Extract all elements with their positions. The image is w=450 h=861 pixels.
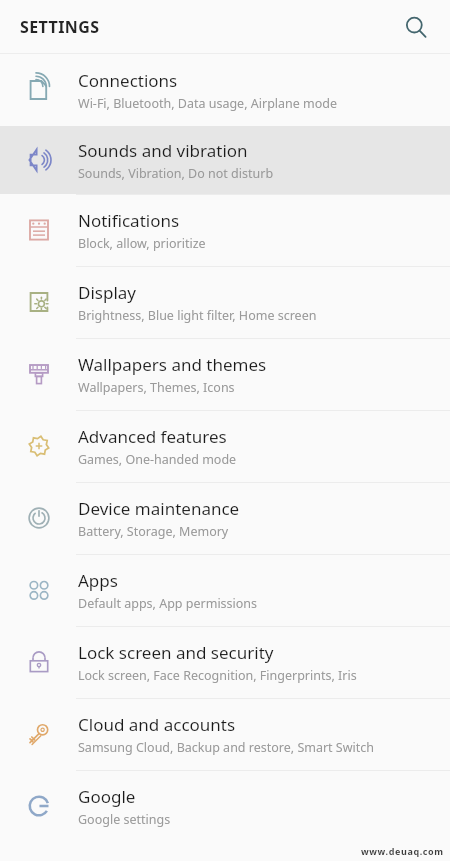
button[interactable]: Google	[0, 770, 450, 842]
staticText: Lock screen and security	[78, 641, 274, 664]
staticText: Wi-Fi, Bluetooth, Data usage, Airplane m…	[78, 95, 338, 112]
staticText: Wallpapers and themes	[78, 353, 267, 376]
button[interactable]: Cloud and accounts	[0, 698, 450, 770]
button[interactable]: Wallpapers and themes	[0, 338, 450, 410]
button[interactable]: Connections	[0, 54, 450, 126]
staticText: Brightness, Blue light filter, Home scre…	[78, 307, 317, 324]
staticText: Google	[78, 785, 136, 808]
button[interactable]: Sounds and vibration	[0, 126, 450, 194]
staticText: Sounds, Vibration, Do not disturb	[78, 165, 274, 182]
button[interactable]: Search	[394, 5, 438, 49]
button[interactable]: Advanced features	[0, 410, 450, 482]
staticText: SETTINGS	[20, 16, 100, 38]
button[interactable]: Lock screen and security	[0, 626, 450, 698]
staticText: Apps	[78, 569, 118, 592]
staticText: Connections	[78, 69, 178, 92]
staticText: Games, One-handed mode	[78, 451, 237, 468]
staticText: Default apps, App permissions	[78, 595, 258, 612]
staticText: Google settings	[78, 811, 171, 828]
staticText: Sounds and vibration	[78, 139, 248, 162]
staticText: Battery, Storage, Memory	[78, 523, 229, 540]
staticText: Advanced features	[78, 425, 227, 448]
staticText: Cloud and accounts	[78, 713, 236, 736]
staticText: Device maintenance	[78, 497, 240, 520]
button[interactable]: Device maintenance	[0, 482, 450, 554]
staticText: Notifications	[78, 209, 180, 232]
staticText: Display	[78, 281, 136, 304]
staticText: Lock screen, Face Recognition, Fingerpri…	[78, 667, 357, 684]
button[interactable]: Notifications	[0, 194, 450, 266]
button[interactable]: Apps	[0, 554, 450, 626]
button[interactable]: Display	[0, 266, 450, 338]
staticText: Samsung Cloud, Backup and restore, Smart…	[78, 739, 375, 756]
staticText: Wallpapers, Themes, Icons	[78, 379, 235, 396]
staticText: www.deuaq.com	[361, 845, 444, 857]
staticText: Block, allow, prioritize	[78, 235, 206, 252]
